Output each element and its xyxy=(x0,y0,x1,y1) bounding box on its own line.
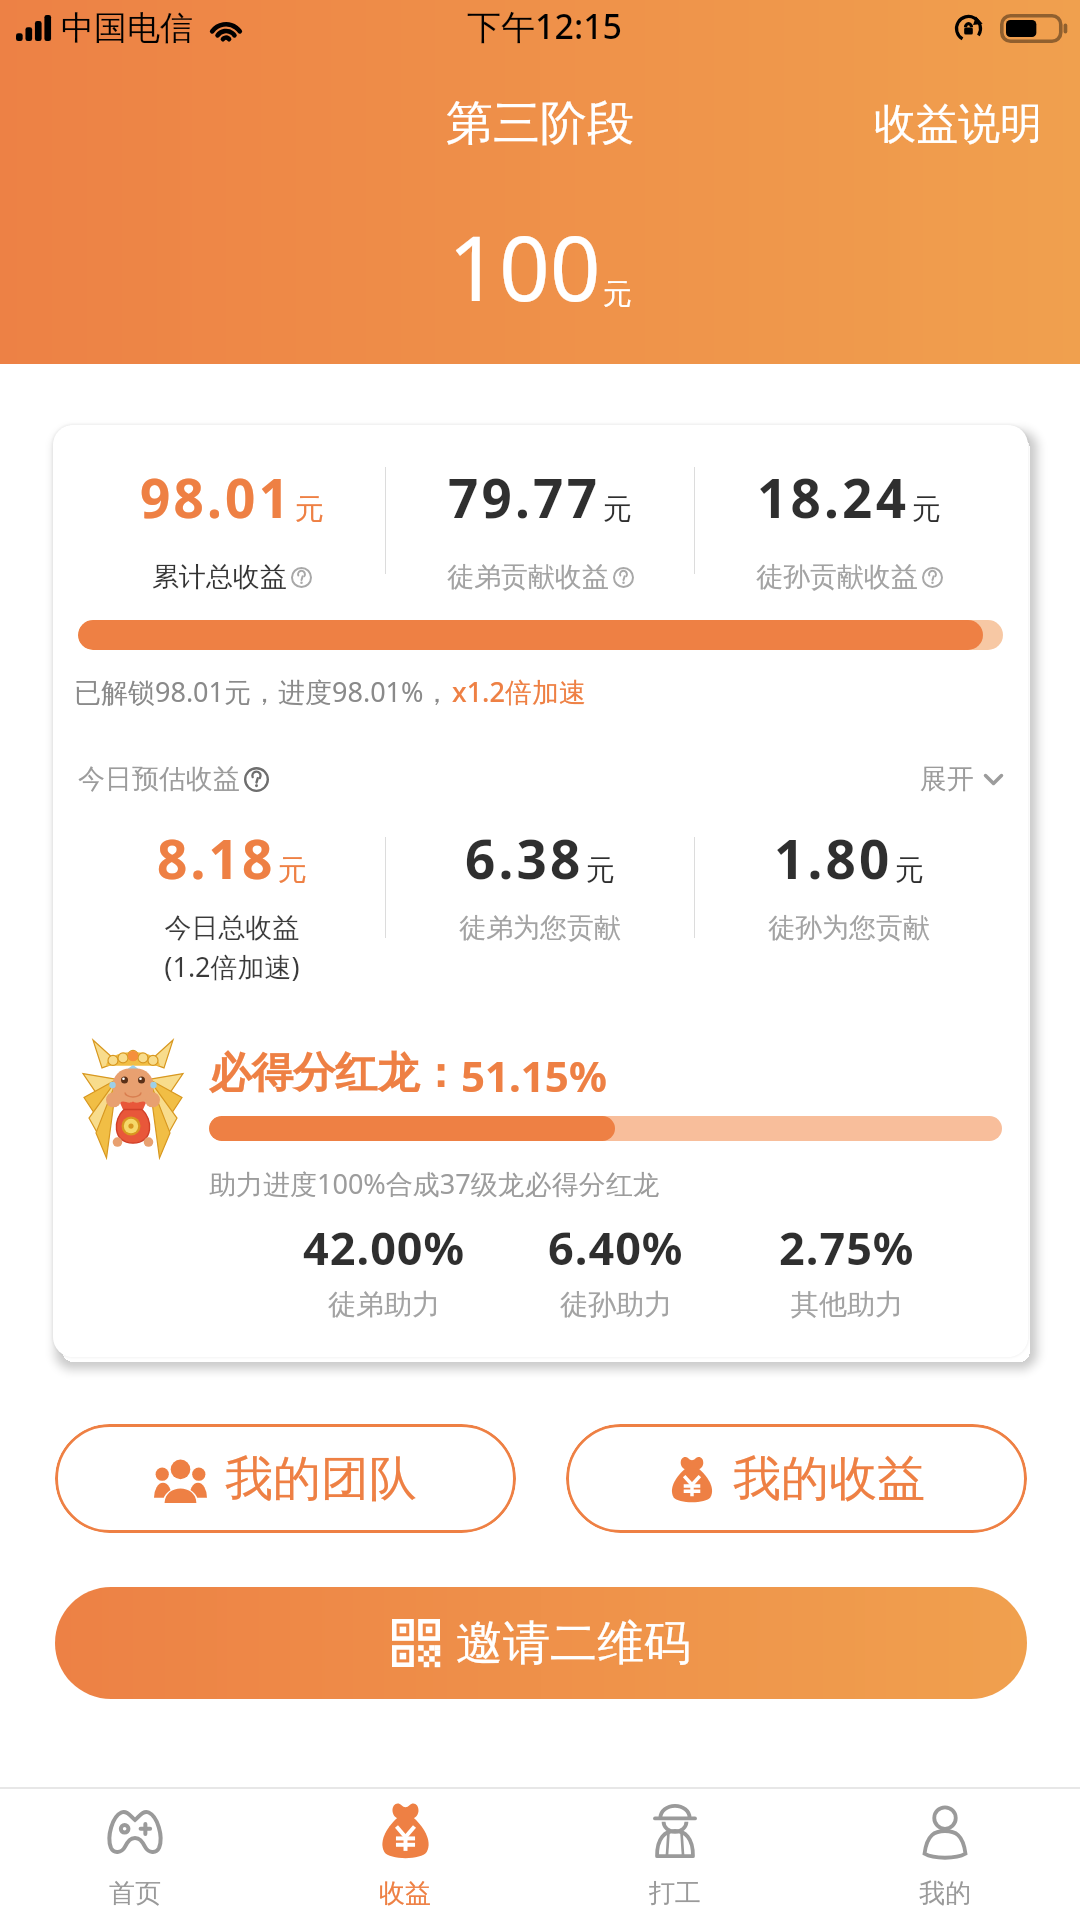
button[interactable]: 邀请二维码 xyxy=(55,1587,1027,1699)
button[interactable]: 首页 xyxy=(0,1789,270,1920)
staticText: 8.18 xyxy=(157,822,276,894)
staticText: 打工 xyxy=(649,1877,701,1910)
staticText: 79.77 xyxy=(448,461,601,533)
staticText: 助力进度100%合成37级龙必得分红龙 xyxy=(209,1165,660,1202)
staticText: 其他助力 xyxy=(791,1287,903,1322)
staticText: x1.2倍加速 xyxy=(452,673,586,710)
staticText: 徒弟贡献收益 xyxy=(447,560,609,594)
staticText: 元 xyxy=(295,491,324,528)
staticText: 51.15% xyxy=(461,1047,607,1104)
staticText: 徒弟为您贡献 xyxy=(459,911,621,945)
staticText: 18.24 xyxy=(757,461,910,533)
button[interactable]: 收益说明 xyxy=(874,98,1042,151)
staticText: 今日总收益 (1.2倍加速) xyxy=(164,911,300,985)
staticText: 徒弟助力 xyxy=(328,1287,440,1322)
staticText: 元 xyxy=(895,852,924,889)
staticText: 98.01 xyxy=(140,461,293,533)
button[interactable]: 收益 xyxy=(270,1789,540,1920)
staticText: 元 xyxy=(603,491,632,528)
button[interactable]: 打工 xyxy=(540,1789,810,1920)
staticText: 下午12:15 xyxy=(467,3,623,49)
staticText: 我的团队 xyxy=(225,1449,417,1509)
staticText: 元 xyxy=(912,491,941,528)
staticText: 已解锁98.01元，进度98.01%， xyxy=(74,673,451,710)
staticText: 徒孙助力 xyxy=(560,1287,672,1322)
other: Rotation lock xyxy=(954,14,983,43)
staticText: 收益 xyxy=(379,1877,431,1910)
staticText: 元 xyxy=(278,852,307,889)
button[interactable]: 我的 xyxy=(810,1789,1080,1920)
staticText: 收益说明 xyxy=(874,98,1042,151)
staticText: 今日预估收益 xyxy=(78,762,240,796)
staticText: 元 xyxy=(603,276,632,313)
staticText: 100 xyxy=(448,206,601,327)
staticText: 徒孙贡献收益 xyxy=(756,560,918,594)
staticText: 中国电信 xyxy=(61,7,193,49)
staticText: 元 xyxy=(586,852,615,889)
staticText: 徒孙为您贡献 xyxy=(768,911,930,945)
staticText: 邀请二维码 xyxy=(456,1614,691,1673)
staticText: 6.40% xyxy=(548,1217,684,1278)
button[interactable]: 我的团队 xyxy=(55,1424,516,1533)
staticText: 1.80 xyxy=(774,822,893,894)
button[interactable]: 展开 xyxy=(920,762,1003,796)
staticText: 我的收益 xyxy=(733,1449,925,1509)
staticText: 我的 xyxy=(919,1877,971,1910)
staticText: 42.00% xyxy=(303,1217,466,1278)
staticText: 展开 xyxy=(920,762,974,796)
staticText: 首页 xyxy=(109,1877,161,1910)
staticText: 6.38 xyxy=(465,822,584,894)
staticText: 必得分红龙： xyxy=(209,1047,461,1100)
staticText: 第三阶段 xyxy=(446,94,634,153)
button[interactable]: 我的收益 xyxy=(566,1424,1027,1533)
staticText: 2.75% xyxy=(779,1217,915,1278)
staticText: 累计总收益 xyxy=(152,560,287,594)
